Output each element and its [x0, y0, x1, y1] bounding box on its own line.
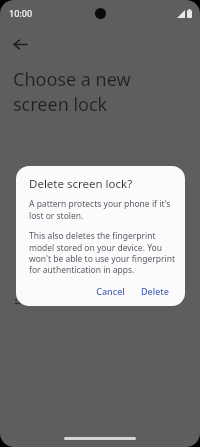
- staticText: Delete screen lock?: [29, 176, 133, 192]
- staticText: Choose a new: [13, 67, 131, 92]
- staticText: Cancel: [96, 285, 125, 297]
- staticText: A pattern protects your phone if it's lo…: [29, 198, 175, 222]
- staticText: screen lock: [13, 92, 108, 117]
- staticText: This also deletes the fingerprint model …: [29, 230, 175, 276]
- button[interactable]: Navigate up: [2, 26, 38, 62]
- button[interactable]: Password: [0, 289, 200, 313]
- staticText: 10:00: [9, 7, 33, 19]
- button[interactable]: Delete: [135, 281, 175, 301]
- staticText: Password: [41, 294, 91, 309]
- staticText: Delete: [141, 285, 169, 297]
- button[interactable]: Cancel: [90, 281, 131, 301]
